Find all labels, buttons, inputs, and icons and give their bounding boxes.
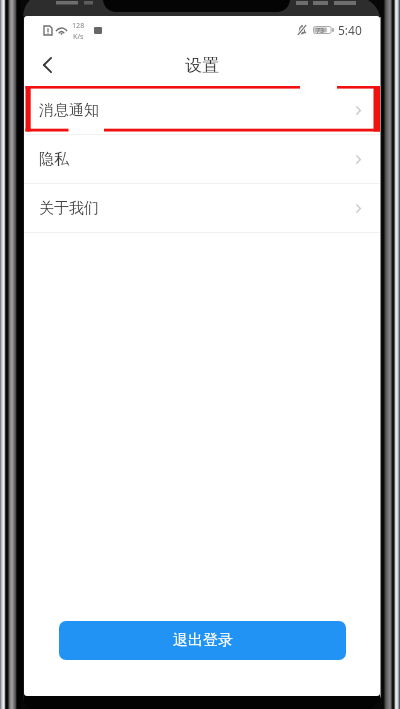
button[interactable]: 退出登录 xyxy=(59,621,346,660)
staticText: 128 xyxy=(72,20,85,30)
button[interactable]: 隐私 xyxy=(24,135,380,184)
staticText: K/s xyxy=(73,31,84,41)
button[interactable]: Back xyxy=(26,44,68,86)
button[interactable]: 消息通知 xyxy=(24,86,380,135)
staticText: 5:40 xyxy=(338,22,362,38)
button[interactable]: 关于我们 xyxy=(24,184,380,233)
staticText: 隐私 xyxy=(39,150,69,169)
staticText: 关于我们 xyxy=(39,199,99,218)
staticText: 设置 xyxy=(185,55,219,76)
staticText: 73 xyxy=(316,26,325,34)
staticText: 消息通知 xyxy=(39,101,99,120)
staticText: 退出登录 xyxy=(173,631,233,650)
